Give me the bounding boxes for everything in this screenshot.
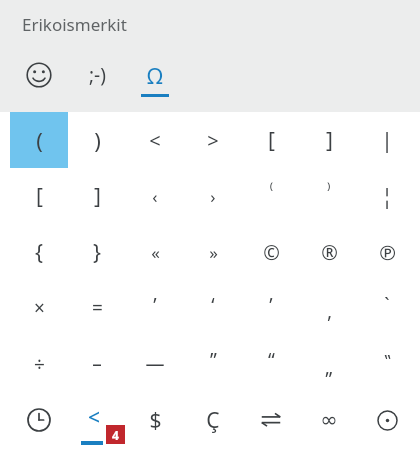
button[interactable]: ∞ [300, 392, 358, 448]
staticText: ʼ [269, 292, 273, 318]
staticText: ’ [153, 292, 157, 318]
button[interactable]: Degree [358, 392, 416, 448]
button[interactable]: × [10, 280, 68, 336]
button[interactable]: ” [184, 336, 242, 392]
staticText: ` [384, 292, 390, 318]
button[interactable]: ʼ [242, 280, 300, 336]
staticText: { [35, 238, 43, 267]
button[interactable]: ‟ [358, 336, 416, 392]
staticText: < [88, 403, 101, 432]
button[interactable]: Emoji [10, 56, 68, 108]
staticText: ] [94, 182, 101, 211]
staticText: ‹ [152, 185, 158, 208]
button[interactable]: ] [300, 112, 358, 168]
button[interactable]: { [10, 224, 68, 280]
staticText: 4 [112, 427, 119, 443]
staticText: Ç [206, 406, 220, 435]
staticText: « [151, 241, 160, 264]
button[interactable]: Ω [126, 56, 184, 108]
button[interactable]: © [242, 224, 300, 280]
button[interactable]: ’ [126, 280, 184, 336]
button[interactable]: ` [358, 280, 416, 336]
staticText: } [93, 238, 101, 267]
staticText: ‚ [327, 298, 332, 324]
staticText: “ [268, 347, 275, 373]
button[interactable]: [ [242, 112, 300, 168]
staticText: ‟ [384, 349, 391, 372]
staticText: — [145, 351, 165, 377]
button[interactable]: [ [10, 168, 68, 224]
staticText: [ [36, 182, 43, 211]
staticText: ℗ [379, 239, 396, 266]
button[interactable]: ) [68, 112, 126, 168]
button[interactable]: = [68, 280, 126, 336]
staticText: Ω [147, 60, 163, 90]
staticText: ⁾ [327, 180, 331, 202]
staticText: ÷ [34, 351, 45, 377]
staticText: < [149, 127, 161, 154]
button[interactable]: ⁽ [242, 168, 300, 224]
staticText: > [207, 127, 219, 154]
button[interactable]: ‚ [300, 280, 358, 336]
staticText: › [210, 185, 216, 208]
staticText: „ [325, 354, 333, 380]
button[interactable]: | [358, 112, 416, 168]
button[interactable]: $ [126, 392, 184, 448]
button[interactable]: » [184, 224, 242, 280]
button[interactable]: Ç [184, 392, 242, 448]
button[interactable]: Swap [242, 392, 300, 448]
button[interactable]: „ [300, 336, 358, 392]
staticText: ] [326, 126, 333, 155]
staticText: ( [36, 125, 43, 155]
staticText: ) [94, 125, 101, 155]
button[interactable]: } [68, 224, 126, 280]
button[interactable]: ‹ [126, 168, 184, 224]
button[interactable]: ( [10, 112, 68, 168]
staticText: » [209, 241, 218, 264]
staticText: × [34, 295, 45, 321]
button[interactable]: ® [300, 224, 358, 280]
staticText: ‘ [211, 292, 215, 318]
staticText: | [381, 126, 393, 155]
staticText: ¦ [381, 182, 393, 211]
button[interactable]: « [126, 224, 184, 280]
button[interactable]: “ [242, 336, 300, 392]
button[interactable]: > [184, 112, 242, 168]
button[interactable]: ¦ [358, 168, 416, 224]
staticText: [ [268, 126, 275, 155]
button[interactable]: < [126, 112, 184, 168]
staticText: ⁽ [269, 180, 273, 202]
staticText: = [92, 295, 103, 321]
staticText: – [92, 351, 102, 377]
staticText: $ [149, 406, 162, 435]
staticText: ” [210, 347, 217, 373]
button[interactable]: ⁾ [300, 168, 358, 224]
staticText: Erikoismerkit [22, 13, 127, 36]
staticText: © [263, 239, 280, 266]
button[interactable]: – [68, 336, 126, 392]
button[interactable]: ] [68, 168, 126, 224]
staticText: ;-) [89, 62, 106, 88]
button[interactable]: › [184, 168, 242, 224]
button[interactable]: ÷ [10, 336, 68, 392]
button[interactable]: Clock [10, 392, 68, 448]
button[interactable]: ‘ [184, 280, 242, 336]
button[interactable]: — [126, 336, 184, 392]
button[interactable]: ;-) [68, 56, 126, 108]
button[interactable]: < [68, 392, 126, 448]
button[interactable]: ℗ [358, 224, 416, 280]
staticText: ∞ [320, 408, 338, 432]
staticText: ® [321, 239, 338, 266]
